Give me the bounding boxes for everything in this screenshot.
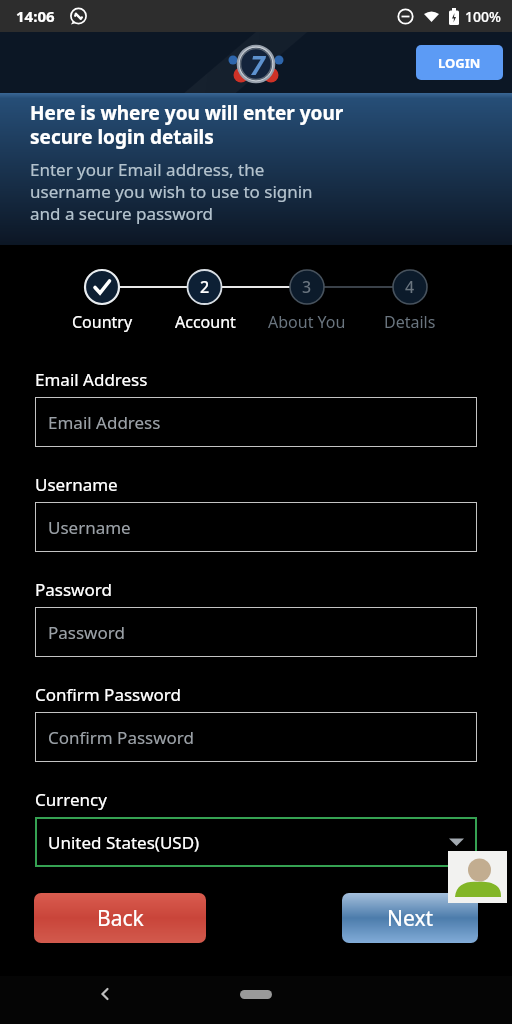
button[interactable] (240, 990, 272, 999)
button[interactable]: Email Address (35, 397, 477, 447)
staticText: LOGIN (438, 54, 481, 72)
staticText: Back (97, 904, 144, 933)
staticText: Username (35, 473, 118, 496)
button[interactable]: LOGIN (416, 45, 503, 80)
staticText: United States(USD) (48, 831, 200, 854)
button[interactable]: About You (247, 311, 367, 333)
staticText: Details (384, 311, 436, 333)
staticText: 4 (405, 276, 415, 298)
button[interactable]: Back (34, 893, 206, 943)
staticText: 3 (302, 276, 312, 298)
staticText: Email Address (35, 368, 148, 391)
staticText: 7 (250, 46, 265, 83)
staticText: Next (387, 904, 434, 933)
button[interactable]: Password (35, 607, 477, 657)
staticText: Email Address (48, 411, 161, 434)
staticText: Here is where you will enter your secure… (30, 100, 344, 149)
button[interactable]: Country (42, 311, 162, 333)
staticText: Enter your Email address, the username y… (30, 158, 313, 225)
staticText: About You (268, 311, 346, 333)
staticText: 100% (465, 7, 501, 26)
staticText: 2 (200, 276, 210, 298)
button[interactable]: United States(USD) (35, 817, 477, 867)
staticText: Username (48, 516, 131, 539)
staticText: Country (72, 311, 133, 333)
staticText: Confirm Password (35, 683, 181, 706)
staticText: 14:06 (16, 6, 55, 26)
button[interactable]: Next (342, 893, 478, 943)
button[interactable]: Confirm Password (35, 712, 477, 762)
button[interactable]: Account (145, 311, 265, 333)
button[interactable] (448, 851, 507, 903)
staticText: Password (48, 621, 125, 644)
button[interactable]: Details (350, 311, 470, 333)
staticText: Currency (35, 788, 107, 811)
staticText: Confirm Password (48, 726, 194, 749)
button[interactable]: Username (35, 502, 477, 552)
staticText: Password (35, 578, 112, 601)
staticText: Account (175, 311, 236, 333)
